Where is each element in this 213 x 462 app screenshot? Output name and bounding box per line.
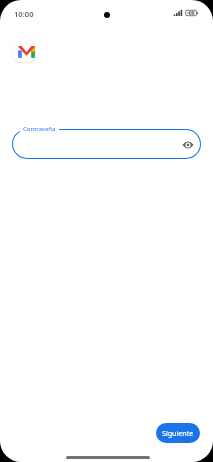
staticText: Contraseña <box>23 125 56 133</box>
staticText: 10:00 <box>14 9 34 19</box>
button[interactable]: Mostrar contraseña <box>180 137 196 153</box>
button[interactable]: Contraseña <box>12 129 201 159</box>
staticText: Siguiente <box>162 428 194 438</box>
button[interactable]: Siguiente <box>156 423 200 443</box>
